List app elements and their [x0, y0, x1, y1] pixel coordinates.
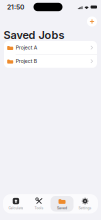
button[interactable]: Settings [73, 196, 97, 212]
button[interactable]: Tools [27, 196, 50, 212]
staticText: Project A [16, 44, 37, 51]
staticText: Saved [57, 206, 67, 210]
button[interactable]: Project A [4, 41, 97, 54]
staticText: Saved Jobs [3, 28, 64, 42]
staticText: Project B [16, 58, 37, 64]
button[interactable]: Project B [4, 55, 97, 68]
staticText: Tools [34, 206, 43, 210]
staticText: 21:50 [7, 3, 24, 11]
staticText: Calculate [8, 206, 23, 210]
button[interactable]: Calculate [4, 196, 27, 212]
button[interactable]: Saved [50, 196, 74, 212]
staticText: Settings [79, 206, 92, 210]
button[interactable]: Add job [85, 15, 98, 28]
